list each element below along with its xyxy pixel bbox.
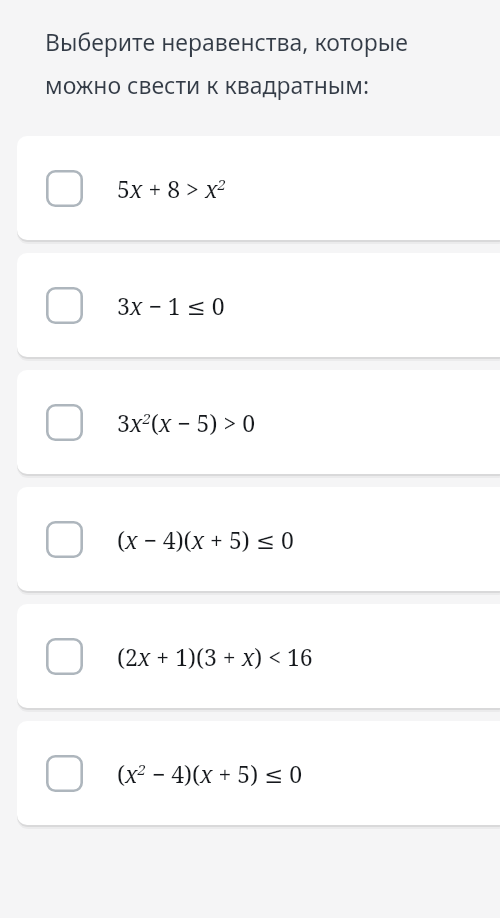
button[interactable]: Выбрать вариант: 3x2(x-5)>0 — [17, 370, 500, 474]
button[interactable]: Выбрать вариант: 5x+8>x2 — [17, 136, 500, 240]
other: Выбрать вариант: (x2-4)(x+5)<=0 — [46, 755, 83, 792]
staticText: можно свести к квадратным: — [45, 69, 370, 100]
button[interactable]: Выбрать вариант: (2x+1)(3+x)<16 — [17, 604, 500, 708]
other: Выбрать вариант: (2x+1)(3+x)<16 — [46, 638, 83, 675]
staticText: (x2 − 4)(x + 5) ≤ 0 — [117, 758, 303, 789]
other: Выбрать вариант: (x-4)(x+5)<=0 — [46, 521, 83, 558]
other: Выбрать вариант: 3x2(x-5)>0 — [46, 404, 83, 441]
staticText: (x − 4)(x + 5) ≤ 0 — [117, 524, 294, 555]
other: Выбрать вариант: 5x+8>x2 — [46, 170, 83, 207]
staticText: (2x + 1)(3 + x) < 16 — [117, 641, 313, 672]
button[interactable]: Выбрать вариант: (x2-4)(x+5)<=0 — [17, 721, 500, 825]
button[interactable]: Выбрать вариант: (x-4)(x+5)<=0 — [17, 487, 500, 591]
staticText: 3x − 1 ≤ 0 — [117, 290, 225, 321]
button[interactable]: Выбрать вариант: 3x-1<=0 — [17, 253, 500, 357]
staticText: 5x + 8 > x2 — [117, 173, 226, 204]
staticText: Выберите неравенства, которые — [45, 26, 408, 57]
other: Выбрать вариант: 3x-1<=0 — [46, 287, 83, 324]
staticText: 3x2(x − 5) > 0 — [117, 407, 256, 438]
